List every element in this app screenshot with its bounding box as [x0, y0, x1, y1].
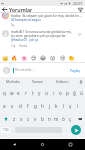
staticText: Merhaba [6, 80, 20, 84]
button[interactable]: y [36, 86, 43, 99]
button[interactable]: ç [67, 112, 74, 125]
button[interactable]: ı [50, 86, 57, 99]
staticText: n [48, 116, 51, 122]
staticText: 👏 [68, 55, 75, 61]
button[interactable]: h [39, 99, 46, 112]
button[interactable]: Paylaş [69, 66, 82, 75]
button[interactable]: ğ [71, 86, 78, 99]
button[interactable]: e [15, 86, 22, 99]
staticText: f [27, 103, 29, 109]
button[interactable]: w [8, 86, 15, 99]
staticText: b [41, 116, 44, 122]
staticText: Yorum ekle… [15, 68, 34, 72]
button[interactable]: Back [10, 140, 19, 149]
staticText: #ChampionsLeague [11, 18, 42, 22]
staticText: hadise Bu akşam çok güzel bir maç izledi… [11, 14, 83, 18]
staticText: 👑 [2, 55, 9, 61]
staticText: h [41, 103, 44, 109]
staticText: @hadise01 çok iyi [11, 38, 39, 42]
staticText: x [20, 116, 23, 122]
button[interactable]: t [29, 86, 36, 99]
button[interactable]: p [64, 86, 71, 99]
staticText: y [38, 90, 41, 96]
button[interactable]: ö [60, 112, 67, 125]
button[interactable]: 😮 [48, 53, 57, 62]
button[interactable]: b [39, 112, 46, 125]
button[interactable]: a [0, 99, 8, 112]
staticText: 😮 [50, 55, 56, 61]
button[interactable]: Send [71, 125, 81, 135]
button[interactable]: s [8, 99, 16, 112]
staticText: e [17, 90, 20, 96]
staticText: 😍 [31, 55, 37, 61]
staticText: ş [69, 103, 72, 109]
button[interactable]: 😂 [39, 53, 48, 62]
button[interactable]: i [74, 99, 81, 112]
button[interactable]: Voice input [76, 77, 85, 86]
button[interactable]: Shift [0, 112, 11, 125]
button[interactable]: r [22, 86, 29, 99]
button[interactable]: 😍 [29, 53, 38, 62]
staticText: q [3, 90, 6, 96]
button[interactable]: Merhaba [0, 77, 25, 86]
button[interactable]: 🌸 [20, 53, 29, 62]
button[interactable]: x [18, 112, 25, 125]
button[interactable]: Back [0, 6, 9, 12]
button[interactable]: ş [67, 99, 74, 112]
staticText: l [63, 103, 65, 109]
staticText: ?123 [3, 128, 9, 132]
staticText: g [34, 103, 37, 109]
staticText: k [55, 103, 58, 109]
staticText: ğ [73, 90, 76, 96]
button[interactable]: 🔥 [10, 53, 19, 62]
button[interactable]: 😢 [58, 53, 67, 62]
button[interactable]: ü [78, 86, 85, 99]
staticText: ç [69, 116, 72, 122]
button[interactable]: Backspace [74, 112, 85, 125]
staticText: Tamam [32, 80, 44, 84]
button[interactable]: q [0, 86, 8, 99]
button[interactable]: 👑 [1, 53, 10, 62]
staticText: j [49, 103, 51, 109]
staticText: Kullanıcı [56, 80, 69, 84]
staticText: 🔥 [11, 55, 18, 61]
button[interactable]: m [53, 112, 60, 125]
staticText: i [77, 103, 79, 109]
button[interactable]: j [46, 99, 53, 112]
staticText: 5g [11, 23, 15, 27]
button[interactable]: u [43, 86, 50, 99]
button[interactable]: Comma [10, 127, 15, 133]
button[interactable]: Like [75, 30, 84, 39]
button[interactable]: Home [38, 140, 47, 149]
button[interactable]: d [16, 99, 24, 112]
staticText: c [27, 116, 30, 122]
staticText: Paylaş [70, 68, 81, 73]
button[interactable]: f [24, 99, 32, 112]
staticText: p [66, 90, 69, 96]
staticText: u [45, 90, 48, 96]
button[interactable]: n [46, 112, 53, 125]
staticText: 😂 [40, 55, 47, 61]
button[interactable]: Share [75, 6, 85, 12]
staticText: 😢 [60, 55, 66, 61]
button[interactable]: ?123 [1, 127, 10, 133]
staticText: o [59, 90, 62, 96]
button[interactable]: l [60, 99, 67, 112]
button[interactable]: c [25, 112, 32, 125]
button[interactable]: 👏 [67, 53, 76, 62]
staticText: 🌸 [21, 55, 28, 61]
button[interactable]: Recents [66, 140, 75, 149]
button[interactable]: g [32, 99, 39, 112]
staticText: 20:01 [73, 1, 83, 6]
staticText: ö [62, 116, 65, 122]
button[interactable]: v [32, 112, 39, 125]
button[interactable]: k [53, 99, 60, 112]
button[interactable]: z [11, 112, 18, 125]
button[interactable]: Period [62, 127, 71, 133]
button[interactable]: o [57, 86, 64, 99]
staticText: 1sa [11, 44, 16, 48]
staticText: , [12, 127, 14, 133]
button[interactable]: Kullanıcı [50, 77, 75, 86]
button[interactable]: Tamam [25, 77, 50, 86]
